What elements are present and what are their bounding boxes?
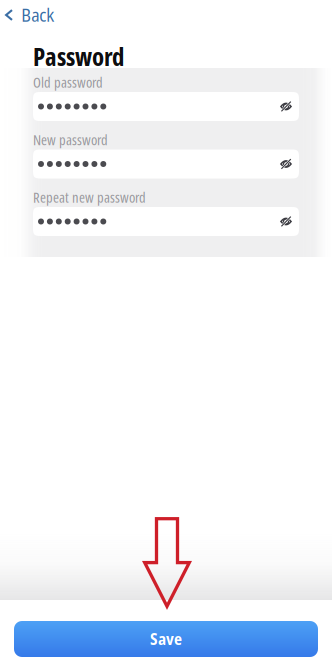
button[interactable]: Show password [274,207,299,236]
staticText: Old password [33,72,103,92]
staticText: Repeat new password [33,187,146,207]
button[interactable]: Show password [274,149,299,178]
staticText: Save [150,629,182,649]
button[interactable]: Save [14,621,318,657]
staticText: New password [33,129,108,149]
staticText: Password [33,39,124,73]
button[interactable]: Back [0,0,54,31]
staticText: Back [21,3,54,27]
button[interactable]: Show password [274,92,299,121]
